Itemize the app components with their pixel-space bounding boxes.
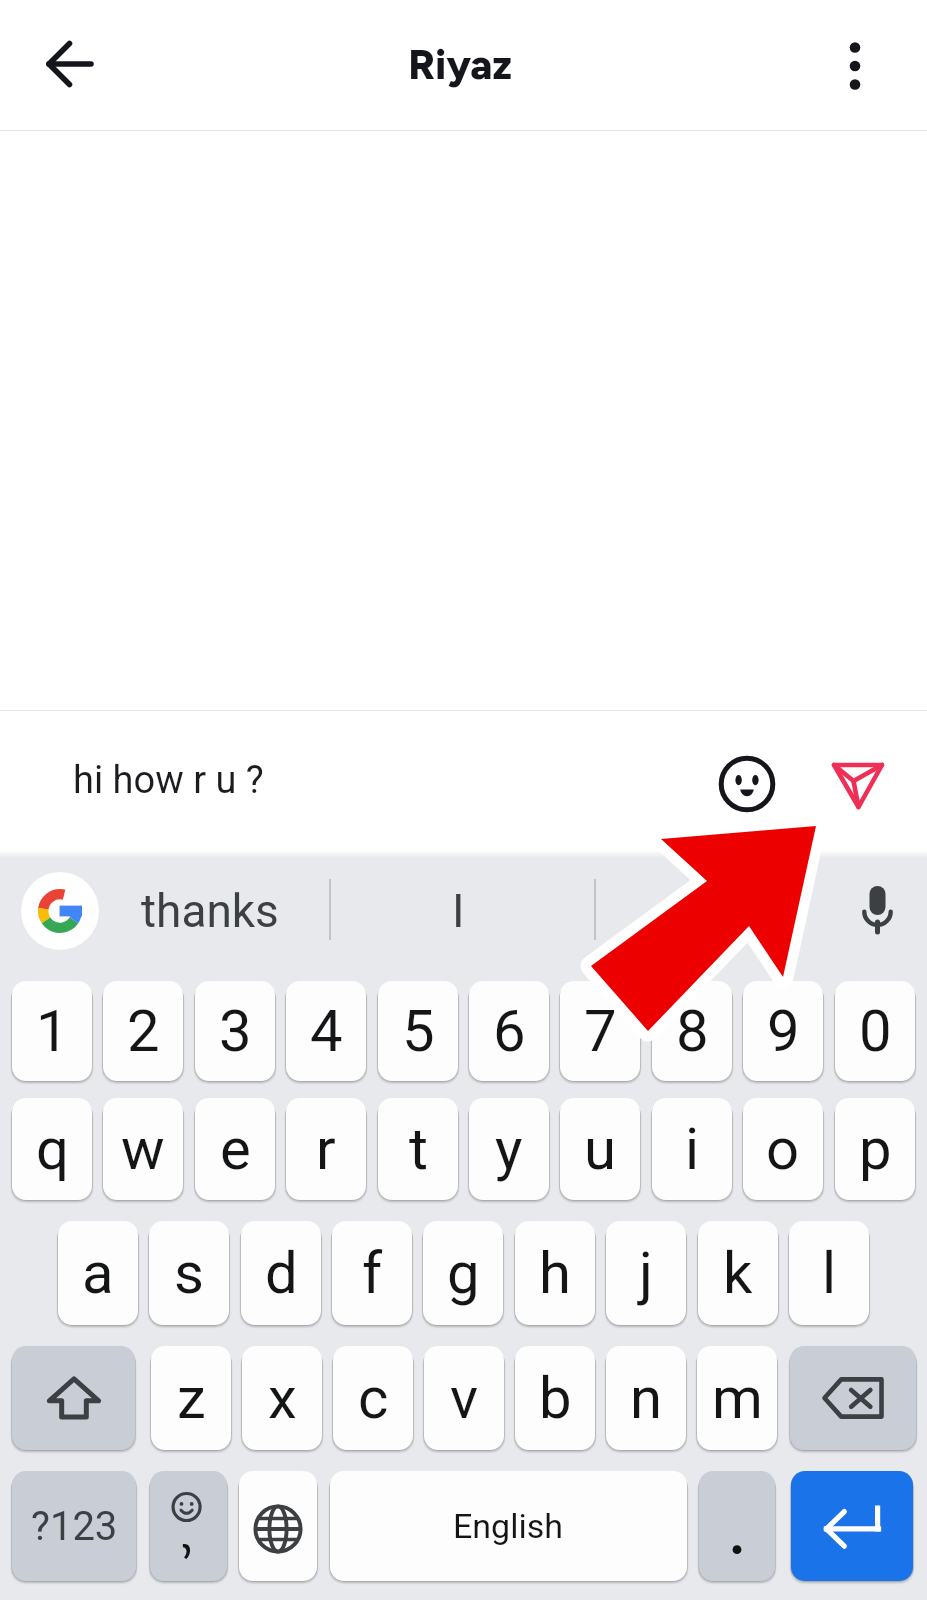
button[interactable]: English: [330, 1471, 687, 1581]
staticText: b: [539, 1364, 572, 1432]
button[interactable]: 2: [103, 981, 183, 1081]
staticText: 6: [493, 997, 526, 1065]
button[interactable]: c: [333, 1346, 413, 1450]
button[interactable]: h: [515, 1221, 595, 1325]
staticText: c: [358, 1364, 389, 1432]
button[interactable]: 3: [195, 981, 275, 1081]
button[interactable]: g: [423, 1221, 503, 1325]
button[interactable]: r: [286, 1098, 366, 1200]
button[interactable]: Emoji: [699, 733, 795, 829]
button[interactable]: 0: [835, 981, 915, 1081]
staticText: v: [450, 1364, 479, 1432]
staticText: u: [584, 1115, 616, 1183]
staticText: w: [121, 1115, 165, 1183]
staticText: y: [495, 1115, 523, 1183]
button[interactable]: i: [652, 1098, 732, 1200]
button[interactable]: p: [835, 1098, 915, 1200]
button[interactable]: k: [698, 1221, 778, 1325]
staticText: 0: [859, 997, 892, 1065]
button[interactable]: l: [789, 1221, 869, 1325]
button[interactable]: j: [606, 1221, 686, 1325]
staticText: 2: [127, 997, 160, 1065]
button[interactable]: Voice input: [845, 868, 911, 934]
staticText: x: [268, 1364, 297, 1432]
button[interactable]: e: [195, 1098, 275, 1200]
staticText: p: [859, 1115, 892, 1183]
button[interactable]: 5: [378, 981, 458, 1081]
staticText: hi how r u ?: [73, 758, 264, 803]
button[interactable]: Back: [22, 16, 118, 112]
staticText: 5: [402, 997, 435, 1065]
button[interactable]: v: [424, 1346, 504, 1450]
staticText: 7: [584, 997, 617, 1065]
button[interactable]: emoji: [150, 1471, 227, 1581]
button[interactable]: 8: [652, 981, 732, 1081]
staticText: t: [409, 1115, 428, 1183]
button[interactable]: 4: [286, 981, 366, 1081]
button[interactable]: shift: [12, 1346, 135, 1450]
button[interactable]: s: [149, 1221, 229, 1325]
button[interactable]: 7: [560, 981, 640, 1081]
button[interactable]: globe: [239, 1471, 317, 1581]
staticText: 3: [219, 997, 252, 1065]
staticText: z: [177, 1364, 206, 1432]
button[interactable]: d: [241, 1221, 321, 1325]
button[interactable]: b: [515, 1346, 595, 1450]
staticText: 9: [767, 997, 800, 1065]
staticText: English: [453, 1506, 564, 1546]
button[interactable]: w: [103, 1098, 183, 1200]
button[interactable]: I: [452, 884, 465, 938]
button[interactable]: backspace: [790, 1346, 916, 1450]
button[interactable]: x: [242, 1346, 322, 1450]
staticText: q: [36, 1115, 69, 1183]
staticText: 8: [676, 997, 709, 1065]
button[interactable]: enter: [791, 1471, 913, 1581]
button[interactable]: f: [332, 1221, 412, 1325]
button[interactable]: t: [378, 1098, 458, 1200]
button[interactable]: a: [58, 1221, 138, 1325]
button[interactable]: n: [606, 1346, 686, 1450]
staticText: h: [539, 1239, 571, 1307]
button[interactable]: m: [697, 1346, 777, 1450]
staticText: ?123: [31, 1503, 118, 1550]
button[interactable]: 9: [743, 981, 823, 1081]
staticText: 4: [310, 997, 343, 1065]
staticText: s: [174, 1239, 204, 1307]
button[interactable]: z: [151, 1346, 231, 1450]
staticText: j: [639, 1239, 653, 1307]
staticText: o: [766, 1115, 800, 1183]
button[interactable]: 1: [12, 981, 92, 1081]
staticText: k: [723, 1239, 753, 1307]
button[interactable]: 6: [469, 981, 549, 1081]
button[interactable]: q: [12, 1098, 92, 1200]
button[interactable]: period: [699, 1471, 775, 1581]
button[interactable]: y: [469, 1098, 549, 1200]
staticText: d: [265, 1239, 298, 1307]
button[interactable]: thanks: [141, 884, 279, 938]
button[interactable]: Google: [21, 872, 99, 950]
staticText: i: [685, 1115, 700, 1183]
staticText: 1: [36, 997, 69, 1065]
staticText: g: [447, 1239, 480, 1307]
staticText: n: [630, 1364, 663, 1432]
staticText: a: [82, 1239, 114, 1307]
staticText: r: [316, 1115, 336, 1183]
button[interactable]: u: [560, 1098, 640, 1200]
staticText: e: [220, 1115, 251, 1183]
staticText: Riyaz: [408, 40, 512, 89]
staticText: l: [822, 1239, 837, 1307]
button[interactable]: o: [743, 1098, 823, 1200]
staticText: f: [362, 1239, 383, 1307]
button[interactable]: More options: [815, 26, 895, 106]
staticText: m: [712, 1364, 763, 1432]
button[interactable]: ?123: [12, 1471, 136, 1581]
button[interactable]: Send: [810, 733, 906, 829]
